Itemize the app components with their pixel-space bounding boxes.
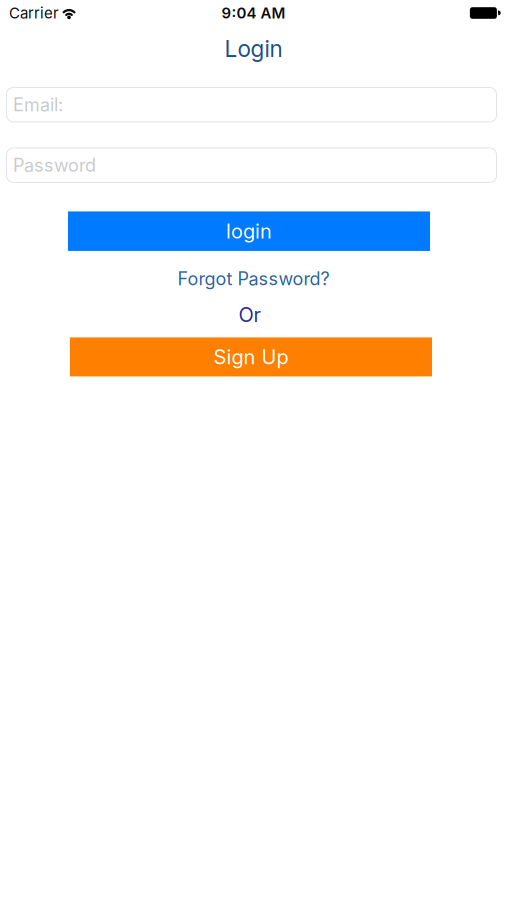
staticText: 9:04 AM: [221, 4, 285, 22]
textField[interactable]: Password: [6, 148, 496, 182]
staticText: Sign Up: [213, 345, 288, 369]
staticText: Or: [238, 303, 260, 327]
button[interactable]: Sign Up: [70, 337, 432, 376]
button[interactable]: Forgot Password?: [177, 268, 329, 290]
button[interactable]: login: [68, 211, 430, 251]
staticText: Login: [224, 35, 282, 62]
staticText: Carrier: [9, 4, 59, 22]
textField[interactable]: Email:: [6, 87, 496, 122]
staticText: Email:: [13, 94, 63, 116]
staticText: Password: [13, 154, 96, 176]
staticText: Forgot Password?: [177, 268, 329, 290]
staticText: login: [226, 219, 272, 243]
